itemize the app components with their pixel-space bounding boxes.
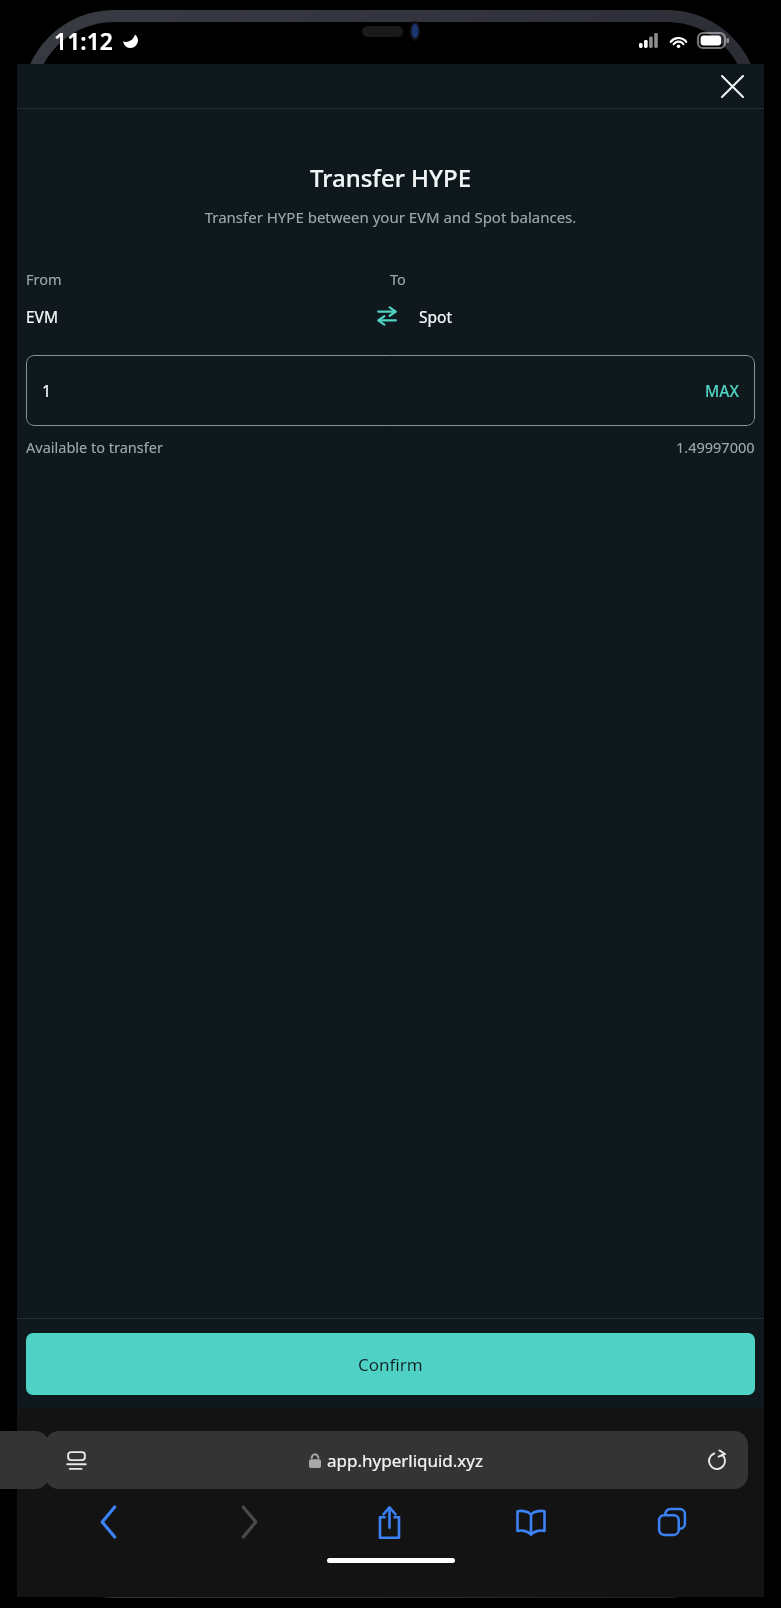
button[interactable]: Tabs: [601, 1491, 742, 1553]
staticText: 11:12: [54, 25, 113, 56]
button[interactable]: Back: [39, 1491, 179, 1553]
button[interactable]: Reload: [700, 1443, 734, 1477]
button[interactable]: MAX: [705, 380, 739, 401]
staticText: MAX: [705, 380, 739, 401]
button[interactable]: Forward: [179, 1491, 319, 1553]
staticText: Transfer HYPE between your EVM and Spot …: [17, 207, 764, 227]
staticText: 1: [42, 380, 52, 402]
staticText: 1.49997000: [676, 437, 755, 457]
button[interactable]: Close: [712, 66, 752, 106]
staticText: From: [26, 269, 390, 289]
button[interactable]: Swap direction: [374, 303, 400, 329]
staticText: app.hyperliquid.xyz: [327, 1449, 484, 1472]
staticText: Spot: [419, 306, 453, 327]
staticText: Available to transfer: [26, 437, 676, 457]
button[interactable]: Bookmarks: [460, 1491, 601, 1553]
button[interactable]: 1: [26, 355, 755, 426]
button[interactable]: Share: [319, 1491, 460, 1553]
staticText: To: [390, 269, 755, 289]
staticText: Transfer HYPE: [17, 161, 764, 194]
staticText: Confirm: [358, 1353, 423, 1376]
button[interactable]: Previous tab: [0, 1431, 49, 1489]
staticText: EVM: [26, 306, 390, 327]
button[interactable]: Page settings: [59, 1443, 93, 1477]
button[interactable]: Page settings: [45, 1431, 748, 1489]
button[interactable]: Confirm: [26, 1333, 755, 1395]
